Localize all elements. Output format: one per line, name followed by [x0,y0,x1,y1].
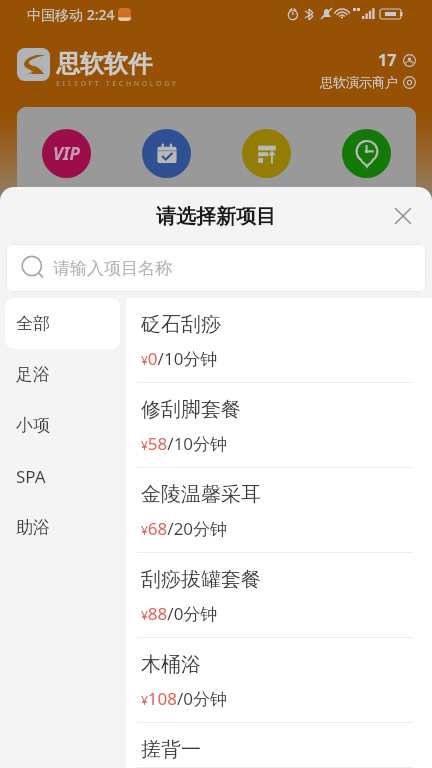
staticText: 搓背一 [141,737,201,762]
staticText: 足浴 [16,364,50,385]
staticText: 砭石刮痧 [141,312,221,337]
staticText: 金陵温馨采耳 [141,482,261,507]
button[interactable]: VIP [42,129,91,178]
staticText: SPA [16,465,46,488]
staticText: ¥68/20分钟 [141,517,228,540]
button[interactable]: 请输入项目名称 [6,244,426,292]
staticText: 木桶浴 [141,652,201,677]
staticText: ¥88/0分钟 [141,602,218,625]
staticText: 修刮脚套餐 [141,397,241,422]
staticText: 请选择新项目 [156,204,276,229]
staticText: 小项 [16,415,50,436]
staticText: 刮痧拔罐套餐 [141,567,261,592]
staticText: 请输入项目名称 [53,258,172,279]
button[interactable]: 预约 [142,129,191,178]
staticText: 中国移动 2:24 [27,5,115,24]
staticText: EISSOFT TECHNOLOGY [56,79,179,89]
button[interactable]: SPA [5,451,120,502]
button[interactable]: 足浴 [5,349,120,400]
button[interactable]: Close [388,201,418,231]
staticText: VIP [53,142,80,165]
staticText: ¥58/10分钟 [141,432,228,455]
button[interactable]: 全部 [5,298,120,349]
button[interactable]: 报表 [242,129,291,178]
other: Account [403,54,416,67]
button[interactable]: 修刮脚套餐 [126,383,432,468]
other: Store [403,76,416,89]
staticText: 助浴 [16,517,50,538]
staticText: 思软软件 [56,49,152,79]
button[interactable]: 木桶浴 [126,638,432,723]
button[interactable]: 砭石刮痧 [126,298,432,383]
button[interactable]: 助浴 [5,502,120,553]
button[interactable]: 小项 [5,400,120,451]
staticText: 17 [378,49,397,71]
button[interactable]: 计时 [342,129,391,178]
button[interactable]: 搓背一 [126,723,432,768]
staticText: 思软演示商户 [320,74,398,90]
button[interactable]: 金陵温馨采耳 [126,468,432,553]
button[interactable]: 刮痧拔罐套餐 [126,553,432,638]
staticText: ¥0/10分钟 [141,347,218,370]
staticText: ¥108/0分钟 [141,687,228,710]
staticText: 全部 [16,313,50,334]
